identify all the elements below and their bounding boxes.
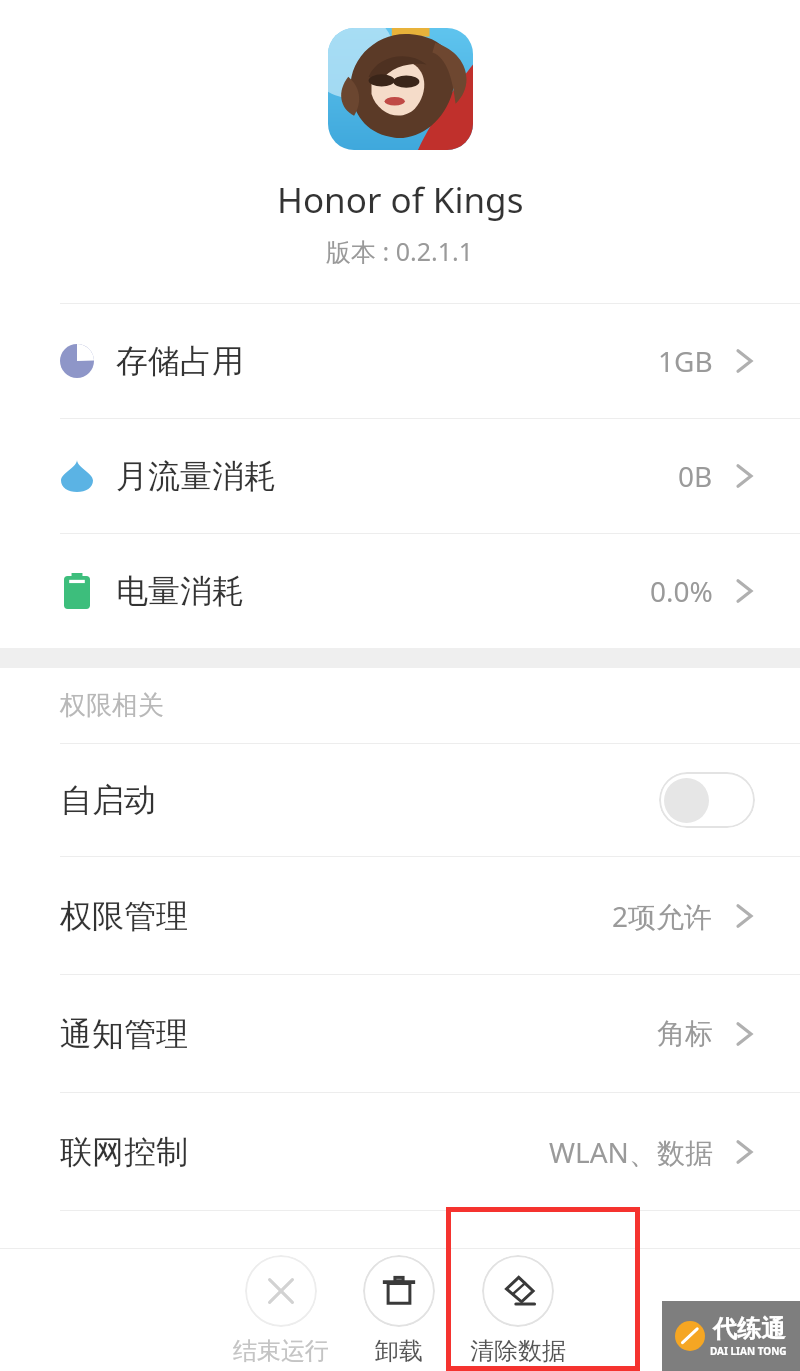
staticText: 清除数据	[470, 1336, 566, 1366]
other: Clear data	[482, 1255, 554, 1327]
other: End running	[245, 1255, 317, 1327]
staticText: WLAN、数据	[549, 1133, 713, 1171]
button[interactable]: 权限管理	[0, 857, 800, 974]
button[interactable]: End running	[221, 1249, 341, 1371]
staticText: 角标	[657, 1016, 713, 1051]
staticText: 2项允许	[612, 897, 713, 935]
staticText: 0B	[678, 457, 713, 495]
staticText: 卸载	[375, 1336, 423, 1366]
button[interactable]: 通知管理	[0, 975, 800, 1092]
staticText: 联网控制	[60, 1132, 188, 1172]
staticText: Honor of Kings	[277, 176, 524, 224]
button[interactable]: 月流量消耗	[0, 419, 800, 533]
staticText: 版本 : 0.2.1.1	[326, 234, 474, 268]
staticText: 存储占用	[116, 341, 244, 381]
button[interactable]: App icon	[328, 28, 473, 150]
button[interactable]: Clear data	[458, 1249, 578, 1371]
button[interactable]: Auto start toggle	[659, 772, 755, 828]
other: Uninstall	[363, 1255, 435, 1327]
staticText: 电量消耗	[116, 571, 244, 611]
staticText: 月流量消耗	[116, 456, 276, 496]
staticText: 1GB	[658, 342, 713, 380]
staticText: 0.0%	[650, 572, 713, 610]
button[interactable]: Uninstall	[339, 1249, 459, 1371]
staticText: 代练通	[713, 1314, 785, 1344]
staticText: 结束运行	[233, 1336, 329, 1366]
button[interactable]: 存储占用	[0, 304, 800, 418]
button[interactable]: 自启动	[0, 744, 800, 856]
staticText: 权限管理	[60, 896, 188, 936]
staticText: 自启动	[60, 780, 156, 820]
staticText: 通知管理	[60, 1014, 188, 1054]
button[interactable]: 电量消耗	[0, 534, 800, 648]
staticText: DAI LIAN TONG	[710, 1344, 787, 1358]
button[interactable]: 联网控制	[0, 1093, 800, 1210]
staticText: 权限相关	[60, 689, 164, 722]
